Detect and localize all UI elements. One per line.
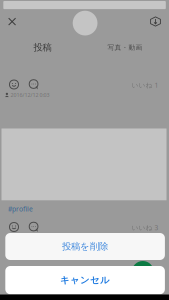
- button[interactable]: Download: [145, 11, 165, 31]
- button[interactable]: Comment: [27, 222, 41, 232]
- staticText: 2016/12/12 0:03: [11, 91, 50, 98]
- staticText: #profile: [8, 204, 33, 213]
- staticText: いいね 1: [131, 81, 158, 90]
- button[interactable]: Reaction: [7, 222, 21, 232]
- button[interactable]: Reaction: [7, 79, 21, 89]
- button[interactable]: Comment: [27, 79, 41, 89]
- staticText: いいね 3: [131, 223, 158, 232]
- button[interactable]: 投稿: [0, 40, 84, 54]
- button[interactable]: 投稿を削除: [5, 233, 165, 260]
- staticText: 投稿: [33, 42, 51, 53]
- staticText: 投稿を削除: [62, 241, 108, 252]
- button[interactable]: Close: [2, 12, 22, 32]
- button[interactable]: 写真・動画: [82, 40, 167, 54]
- staticText: 写真・動画: [107, 43, 142, 52]
- button[interactable]: キャンセル: [5, 266, 165, 294]
- staticText: キャンセル: [60, 274, 110, 286]
